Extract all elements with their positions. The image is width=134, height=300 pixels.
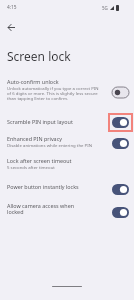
button[interactable]: Scramble PIN input layout — [0, 106, 134, 136]
staticText: 5 seconds after timeout — [7, 164, 55, 170]
staticText: Scramble PIN input layout — [7, 118, 73, 125]
button[interactable]: Enhanced PIN privacy — [0, 130, 134, 152]
staticText: Disable animations while entering the PI… — [7, 142, 92, 148]
staticText: Enhanced PIN privacy — [7, 135, 62, 142]
staticText: Lock after screen timeout — [7, 157, 72, 164]
staticText: Power button instantly locks — [7, 183, 79, 190]
staticText: Screen lock — [7, 48, 71, 64]
staticText: Allow camera access when locked — [7, 202, 74, 216]
button[interactable]: Power button instantly locks — [0, 176, 134, 196]
staticText: 4:15 — [7, 4, 17, 11]
button[interactable]: Lock after screen timeout — [0, 153, 134, 174]
button[interactable]: Allow camera access when locked — [0, 196, 134, 222]
staticText: Unlock automatically if you type a corre… — [7, 85, 99, 101]
button[interactable] — [3, 20, 20, 35]
button[interactable]: Auto-confirm unlock — [0, 73, 134, 105]
staticText: Auto-confirm unlock — [7, 78, 59, 85]
staticText: 5G — [102, 5, 108, 11]
